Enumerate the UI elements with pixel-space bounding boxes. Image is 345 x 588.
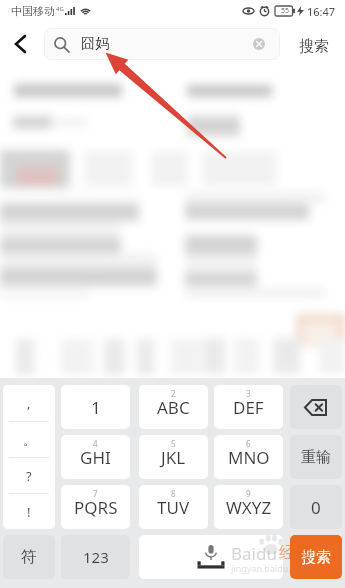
staticText: 7 [93, 488, 98, 499]
button[interactable]: Delete [290, 385, 342, 429]
button[interactable]: ABC [139, 385, 208, 429]
staticText: 囧妈 [81, 35, 109, 53]
staticText: 5 [171, 438, 176, 449]
button[interactable]: WXYZ [214, 485, 283, 529]
staticText: JKL [161, 446, 186, 469]
staticText: 9 [246, 488, 251, 499]
button[interactable]: 0 [290, 485, 342, 529]
staticText: 搜索 [299, 37, 329, 56]
button[interactable]: , [3, 385, 55, 421]
staticText: 中国移动 [11, 4, 55, 18]
staticText: 2 [171, 388, 176, 399]
staticText: ! [27, 503, 31, 521]
button[interactable]: Clear text [253, 38, 265, 50]
staticText: 55 [281, 6, 290, 16]
staticText: , [27, 394, 31, 412]
button[interactable]: GHI [61, 435, 130, 479]
staticText: 123 [83, 547, 109, 567]
staticText: TUV [157, 496, 190, 519]
staticText: 4G [56, 5, 64, 13]
staticText: ABC [157, 396, 190, 419]
staticText: 0 [311, 496, 321, 519]
button[interactable]: DEF [214, 385, 283, 429]
button[interactable]: 123 [61, 535, 130, 579]
staticText: 4 [93, 438, 98, 449]
staticText: 6 [246, 438, 251, 449]
staticText: jingyan.baidu.com [231, 562, 309, 574]
staticText: 8 [171, 488, 176, 499]
staticText: 搜索 [301, 548, 331, 567]
staticText: ? [26, 467, 32, 485]
staticText: DEF [233, 396, 264, 419]
button[interactable]: 1 [61, 385, 130, 429]
staticText: MNO [228, 446, 270, 469]
staticText: 3 [246, 388, 251, 399]
staticText: 重输 [301, 448, 331, 467]
staticText: Baidu [231, 542, 277, 565]
staticText: 1 [91, 396, 101, 419]
button[interactable]: JKL [139, 435, 208, 479]
staticText: PQRS [74, 496, 118, 519]
staticText: 符 [21, 547, 37, 567]
staticText: WXYZ [226, 496, 272, 519]
button[interactable]: MNO [214, 435, 283, 479]
button[interactable]: ! [3, 494, 55, 529]
button[interactable]: Voice input [139, 535, 283, 579]
button[interactable]: 重输 [290, 435, 342, 479]
button[interactable]: Back [4, 28, 36, 60]
button[interactable]: TUV [139, 485, 208, 529]
staticText: 经验 [279, 542, 313, 563]
staticText: GHI [80, 446, 111, 469]
staticText: 16:47 [307, 4, 336, 19]
button[interactable]: 。 [3, 422, 55, 457]
staticText: 。 [23, 432, 36, 448]
button[interactable]: , [3, 385, 55, 529]
button[interactable]: 囧妈 [44, 28, 280, 60]
button[interactable]: 符 [3, 535, 55, 579]
button[interactable]: 搜索 [290, 535, 342, 579]
button[interactable]: 搜索 [291, 30, 337, 62]
button[interactable]: PQRS [61, 485, 130, 529]
button[interactable]: ? [3, 458, 55, 493]
